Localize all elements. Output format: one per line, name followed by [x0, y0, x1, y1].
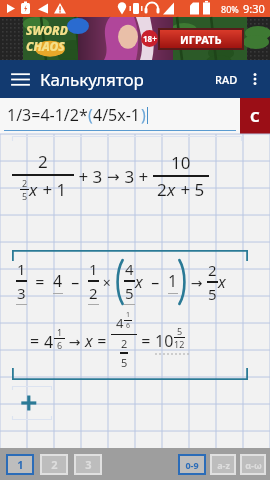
button[interactable]: 2 — [40, 454, 68, 475]
staticText: 2 — [22, 177, 28, 189]
staticText: 3 + — [120, 165, 153, 188]
staticText: x — [29, 178, 38, 201]
staticText: + 1 — [38, 178, 67, 201]
staticText: 10 — [171, 151, 191, 174]
button[interactable]: Advertisement: Sword Chaos — [0, 17, 270, 60]
staticText: 4 — [116, 314, 124, 332]
staticText: – — [143, 271, 168, 293]
staticText: 4 — [125, 259, 134, 279]
staticText: → — [107, 168, 120, 185]
staticText: 18+ — [143, 33, 157, 44]
button[interactable]: 3 — [74, 454, 102, 475]
staticText: Калькулятор — [40, 68, 144, 91]
staticText: 5 — [121, 355, 128, 370]
staticText: 1 — [17, 259, 26, 279]
staticText: x — [85, 330, 93, 352]
staticText: + 3 — [74, 165, 107, 188]
staticText: → — [65, 332, 85, 351]
staticText: 4 — [53, 270, 63, 292]
staticText: 2 — [121, 336, 128, 351]
staticText: 1 — [126, 310, 131, 320]
staticText: C — [250, 106, 260, 126]
button[interactable]: More options — [242, 66, 268, 92]
staticText: 0-9 — [185, 459, 199, 471]
staticText: 1 — [89, 259, 98, 279]
button[interactable]: C — [240, 98, 270, 134]
staticText: 6 — [126, 321, 131, 331]
staticText: 1 — [17, 457, 24, 472]
staticText: 1 — [168, 270, 178, 292]
staticText: 5 — [22, 190, 28, 202]
staticText: – — [63, 271, 88, 293]
button[interactable]: Menu — [7, 66, 33, 92]
staticText: ИГРАТЬ — [180, 32, 222, 47]
staticText: 5 — [208, 284, 217, 304]
staticText: = — [93, 330, 111, 352]
staticText: 2 — [89, 283, 98, 303]
staticText: 5 — [125, 283, 134, 303]
staticText: × — [99, 273, 115, 292]
staticText: = — [30, 330, 44, 352]
button[interactable]: 1/3=4-1/2* — [0, 98, 240, 134]
staticText: + 5 — [176, 178, 205, 201]
staticText: 1/3=4-1/2* — [7, 104, 88, 126]
button[interactable]: ИГРАТЬ — [160, 30, 242, 48]
staticText: 2 — [157, 178, 167, 201]
staticText: 80% — [221, 3, 239, 15]
button[interactable]: 2 — [12, 136, 242, 208]
button[interactable]: 1 — [6, 454, 34, 475]
staticText: 4/5x-1 — [93, 104, 141, 126]
staticText: ) — [141, 104, 146, 126]
staticText: 1 — [57, 326, 63, 338]
staticText: 3 — [17, 283, 26, 303]
button[interactable]: Add expression — [12, 386, 52, 420]
staticText: = — [137, 330, 155, 352]
button[interactable]: 0-9 — [178, 454, 206, 475]
staticText: x — [167, 178, 176, 201]
button[interactable]: α-ω — [240, 454, 266, 475]
button[interactable]: a-z — [210, 454, 236, 475]
staticText: 3 — [85, 457, 92, 472]
staticText: = — [27, 271, 53, 293]
staticText: x — [218, 271, 226, 293]
staticText: RAD — [215, 72, 238, 87]
staticText: ( — [88, 104, 93, 126]
staticText: 5 — [177, 325, 183, 337]
staticText: CHAOS — [26, 38, 65, 54]
staticText: 2 — [51, 457, 58, 472]
staticText: 4 — [44, 331, 54, 353]
staticText: a-z — [217, 459, 230, 471]
staticText: 10 — [155, 330, 174, 352]
button[interactable]: RAD — [211, 66, 242, 93]
staticText: 2 — [38, 150, 48, 173]
staticText: SWORD — [26, 22, 68, 38]
staticText: 9:30 — [243, 1, 265, 16]
staticText: x — [135, 271, 143, 293]
staticText: α-ω — [245, 459, 262, 471]
button[interactable]: 1 — [12, 250, 248, 380]
staticText: 2 — [208, 260, 217, 280]
staticText: 12 — [174, 338, 185, 350]
staticText: → — [187, 273, 207, 292]
staticText: 6 — [57, 339, 63, 351]
